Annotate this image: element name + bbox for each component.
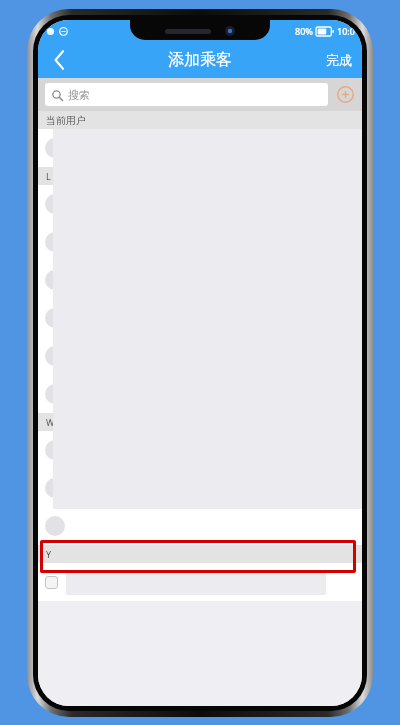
button[interactable] — [38, 261, 362, 299]
staticText: W — [46, 416, 55, 428]
staticText: Y — [46, 548, 52, 560]
button[interactable]: Back — [38, 42, 80, 78]
button[interactable]: 搜索 — [45, 83, 328, 106]
staticText: L — [46, 170, 51, 182]
button[interactable]: 完成 — [316, 42, 362, 78]
staticText: 80% — [295, 25, 313, 37]
staticText: 当前用户 — [46, 114, 86, 127]
button[interactable] — [38, 223, 362, 261]
staticText: 完成 — [326, 52, 352, 68]
button[interactable] — [38, 563, 362, 601]
button[interactable] — [38, 507, 362, 545]
staticText: 10:0 — [337, 25, 355, 37]
button[interactable] — [38, 129, 362, 167]
button[interactable] — [38, 185, 362, 223]
button[interactable] — [38, 469, 362, 507]
button[interactable] — [38, 431, 362, 469]
button[interactable] — [38, 337, 362, 375]
button[interactable] — [38, 375, 362, 413]
button[interactable]: Add passenger — [328, 78, 362, 111]
staticText: 添加乘客 — [168, 50, 232, 70]
button[interactable] — [38, 299, 362, 337]
staticText: 搜索 — [68, 88, 90, 102]
